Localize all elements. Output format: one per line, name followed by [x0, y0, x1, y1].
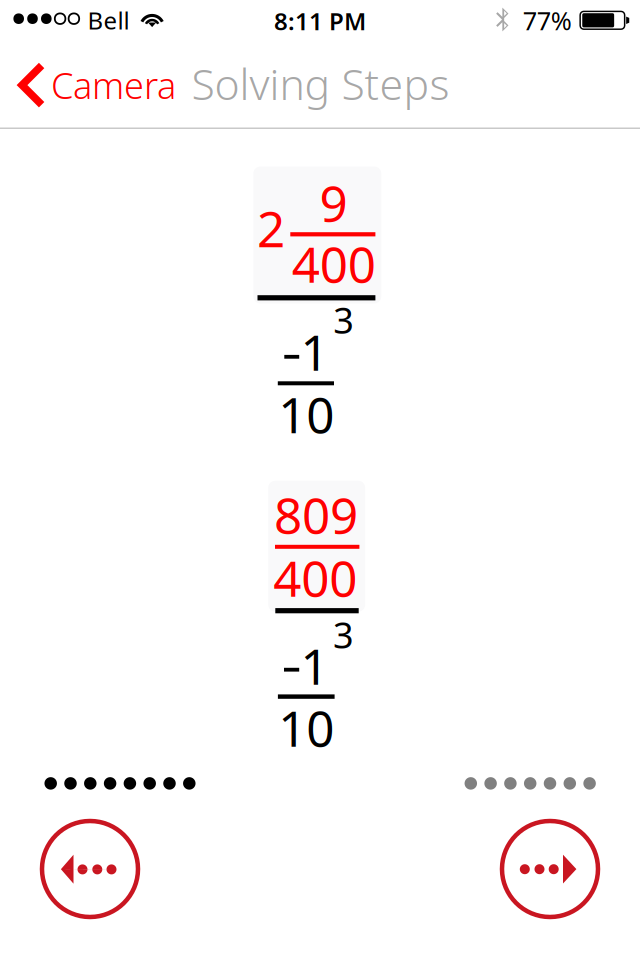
staticText: 2	[257, 195, 285, 261]
staticText: Bell	[88, 4, 130, 36]
staticText: 10	[278, 381, 334, 447]
staticText: 8:11 PM	[274, 5, 366, 37]
staticText: 9	[319, 170, 347, 235]
button[interactable]: Next step	[501, 820, 599, 918]
staticText: 77%	[523, 4, 572, 37]
staticText: 1	[300, 633, 328, 698]
button[interactable]: Previous step	[41, 820, 139, 918]
staticText: 3	[333, 611, 354, 658]
staticText: 400	[292, 231, 376, 296]
staticText: 3	[333, 296, 354, 344]
staticText: 400	[273, 545, 357, 610]
staticText: Camera	[51, 61, 176, 109]
staticText: 1	[300, 319, 328, 384]
staticText: 809	[274, 482, 358, 547]
button[interactable]: Camera	[5, 42, 184, 128]
staticText: Solving Steps	[191, 55, 449, 112]
staticText: 10	[278, 695, 334, 760]
